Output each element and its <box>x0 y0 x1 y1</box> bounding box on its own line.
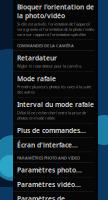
button[interactable]: Interval du mode rafale <box>13 98 98 123</box>
staticText: Écran d'interface... <box>17 140 78 149</box>
button[interactable]: Paramètres de position... <box>13 192 98 200</box>
staticText: Interval du mode rafale <box>17 100 94 109</box>
button[interactable]: Paramètres vidéo... <box>13 177 98 191</box>
staticText: Mode rafale <box>17 74 56 83</box>
staticText: Paramètres photo... <box>17 166 82 174</box>
staticText: Délai (à ne rechercher) entre la prise d… <box>17 110 86 121</box>
staticText: Si elle est activée, l'orientation de l'… <box>17 21 94 37</box>
staticText: Retardateur <box>17 53 57 62</box>
staticText: Prendre plusieurs photos les unes à la s… <box>17 84 91 95</box>
staticText: PARAMÈTRES PHOTO AND VIDEO <box>17 155 80 161</box>
staticText: Bloquer l'orientation de la photo/vidéo <box>17 2 94 20</box>
button[interactable]: Retardateur <box>13 51 98 71</box>
staticText: COMMANDES DE LA CAMÉRA <box>17 43 74 48</box>
staticText: Paramètres de position... <box>17 194 65 200</box>
button[interactable]: Plus de commandes... <box>13 124 98 137</box>
button[interactable]: Paramètres photo... <box>13 163 98 177</box>
staticText: Régler le retardateur pour la caméra. <box>17 63 82 69</box>
button[interactable]: Bloquer l'orientation de la photo/vidéo <box>13 0 98 40</box>
staticText: Plus de commandes... <box>17 126 86 135</box>
staticText: Paramètres vidéo... <box>17 180 81 189</box>
button[interactable]: Mode rafale <box>13 72 98 97</box>
button[interactable]: Écran d'interface... <box>13 138 98 152</box>
